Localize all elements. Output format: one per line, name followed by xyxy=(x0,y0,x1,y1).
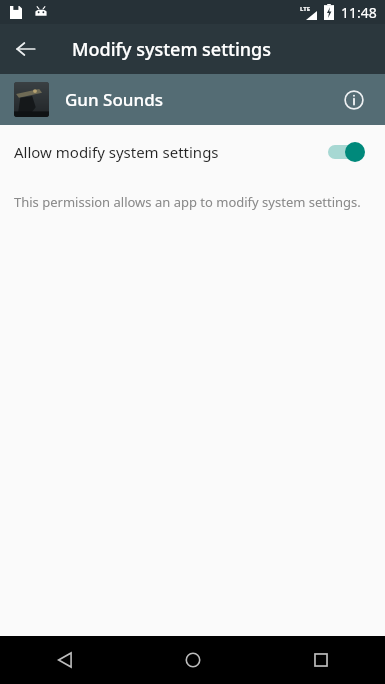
staticText: Allow modify system settings xyxy=(14,142,219,162)
staticText: LTE xyxy=(300,5,311,13)
staticText: Modify system settings xyxy=(72,37,272,62)
button[interactable]: Recents xyxy=(257,636,385,684)
button[interactable]: Back xyxy=(8,31,44,67)
staticText: This permission allows an app to modify … xyxy=(14,193,371,211)
button[interactable]: Gun Sounds xyxy=(0,74,385,125)
button[interactable]: App info xyxy=(337,83,371,117)
button[interactable]: Home xyxy=(129,636,257,684)
button[interactable]: Allow modify system settings toggle xyxy=(325,140,369,164)
staticText: Gun Sounds xyxy=(65,88,163,111)
button[interactable]: Allow modify system settings xyxy=(0,125,385,179)
staticText: 11:48 xyxy=(341,3,377,22)
button[interactable]: Back xyxy=(0,636,129,684)
